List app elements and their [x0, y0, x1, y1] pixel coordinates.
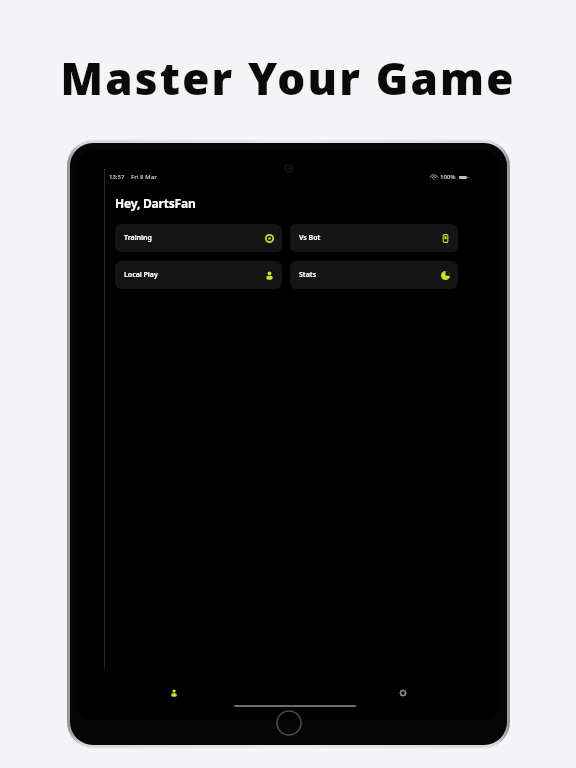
- staticText: Vs Bot: [299, 233, 321, 243]
- button[interactable]: Vs Bot: [290, 224, 458, 252]
- button[interactable]: Local Play: [115, 261, 282, 289]
- staticText: 100%: [440, 173, 456, 181]
- other: Home: [276, 710, 302, 736]
- button[interactable]: Profile: [167, 686, 181, 700]
- staticText: Fri 8 Mar: [131, 173, 157, 181]
- staticText: 13:57: [109, 173, 125, 181]
- button[interactable]: Stats: [290, 261, 458, 289]
- staticText: Local Play: [124, 270, 158, 280]
- staticText: Master Your Game: [60, 48, 516, 108]
- staticText: Hey, DartsFan: [115, 195, 196, 211]
- staticText: Training: [124, 233, 152, 243]
- button[interactable]: Training: [115, 224, 282, 252]
- staticText: Stats: [299, 270, 317, 280]
- button[interactable]: Settings: [396, 686, 410, 700]
